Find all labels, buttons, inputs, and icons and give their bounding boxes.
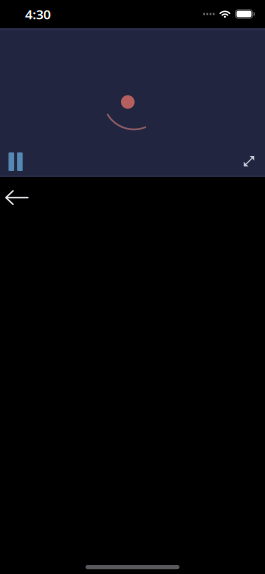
button[interactable]: Pause <box>0 144 34 177</box>
staticText: 4:30 <box>25 5 51 23</box>
button[interactable]: Back <box>0 177 38 211</box>
button[interactable]: Enter full screen <box>231 145 265 177</box>
